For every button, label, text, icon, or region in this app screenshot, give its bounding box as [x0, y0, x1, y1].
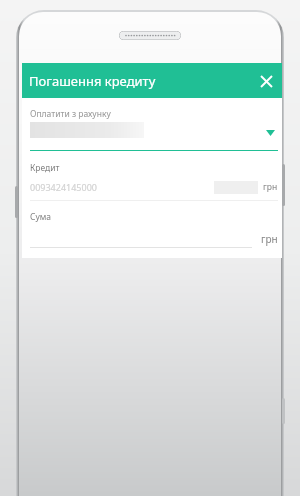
button[interactable]: 0093424145000: [30, 174, 278, 200]
button[interactable]: Select account: [30, 120, 278, 150]
button[interactable]: Погашення кредиту: [22, 63, 282, 98]
button[interactable]: грн: [30, 223, 278, 247]
other: Select account: [266, 130, 275, 136]
staticText: грн: [261, 232, 278, 246]
staticText: Оплатити з рахунку: [30, 108, 111, 120]
staticText: Кредит: [30, 162, 60, 174]
staticText: Сума: [30, 211, 52, 223]
staticText: грн: [263, 181, 278, 193]
button[interactable]: Close: [255, 70, 277, 92]
staticText: 0093424145000: [30, 181, 97, 193]
staticText: Погашення кредиту: [29, 72, 255, 90]
